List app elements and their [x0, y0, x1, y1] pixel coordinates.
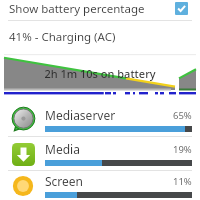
button[interactable]: Mediaserver icon	[0, 103, 200, 136]
staticText: 41% - Charging (AC)	[9, 29, 116, 45]
staticText: 65%	[173, 109, 192, 122]
staticText: 2h 1m 10s on battery	[44, 66, 156, 81]
staticText: 19%	[173, 143, 192, 156]
staticText: 11%	[173, 175, 192, 188]
staticText: Mediaserver	[45, 107, 116, 123]
button[interactable]: Screen icon	[0, 171, 200, 200]
staticText: Show battery percentage	[9, 1, 145, 17]
other: Show battery percentage checkbox	[175, 2, 188, 15]
staticText: Screen	[45, 173, 84, 189]
other: Screen icon	[12, 175, 34, 197]
button[interactable]: Media icon	[0, 137, 200, 170]
staticText: Media	[45, 141, 80, 157]
other: Media icon	[12, 143, 35, 166]
button[interactable]: Show battery percentage	[0, 0, 200, 17]
other: Mediaserver icon	[11, 108, 35, 132]
